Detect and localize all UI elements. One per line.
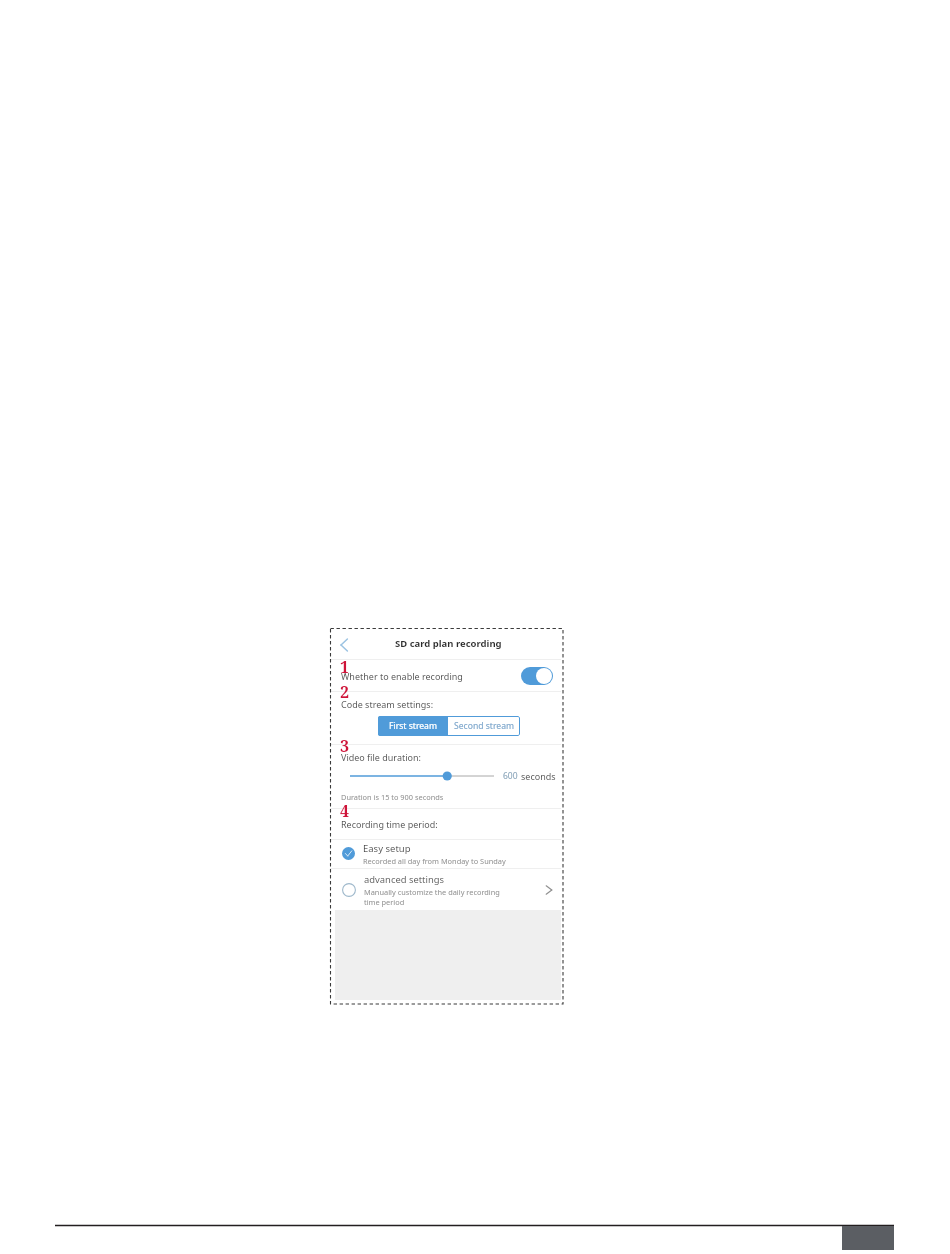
- staticText: 4: [340, 800, 350, 822]
- staticText: SD card plan recording: [395, 637, 502, 650]
- button[interactable]: Easy setup: [330, 840, 561, 868]
- staticText: 3: [340, 735, 350, 757]
- staticText: Second stream: [454, 720, 515, 732]
- staticText: 1: [340, 656, 350, 678]
- staticText: advanced settings: [364, 873, 444, 886]
- staticText: Video file duration:: [341, 751, 421, 763]
- staticText: Manually customize the daily recording t…: [364, 887, 503, 907]
- staticText: Recording time period:: [341, 818, 438, 830]
- button[interactable]: First stream: [378, 716, 448, 736]
- staticText: 2: [340, 681, 350, 703]
- button[interactable]: Whether to enable recording: [330, 660, 561, 691]
- staticText: First stream: [389, 720, 437, 732]
- staticText: seconds: [521, 770, 556, 782]
- button[interactable]: [350, 770, 494, 782]
- button[interactable]: Second stream: [448, 716, 520, 736]
- staticText: Whether to enable recording: [341, 670, 463, 682]
- staticText: Easy setup: [363, 842, 411, 855]
- button[interactable]: advanced settings: [330, 869, 561, 910]
- staticText: Recorded all day from Monday to Sunday: [363, 856, 506, 866]
- button[interactable]: Back: [336, 636, 352, 652]
- staticText: 600: [503, 770, 518, 782]
- button[interactable]: Enable recording toggle: [521, 667, 553, 685]
- staticText: Duration is 15 to 900 seconds: [341, 792, 444, 802]
- staticText: Code stream settings:: [341, 698, 434, 710]
